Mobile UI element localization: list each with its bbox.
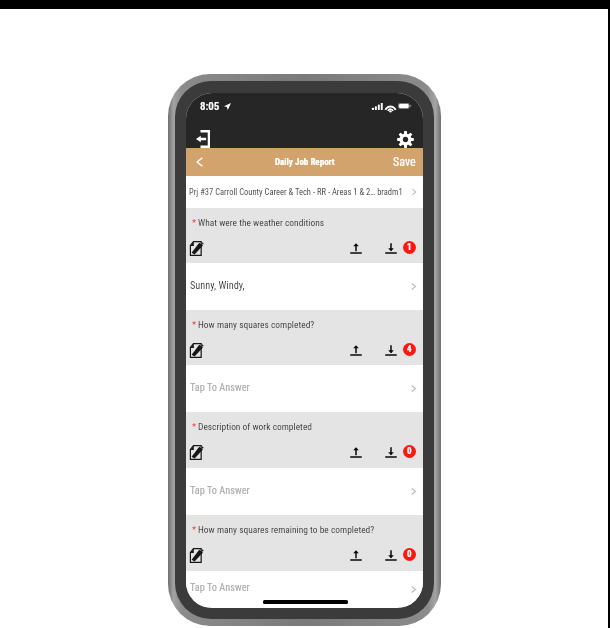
button[interactable]: Back bbox=[186, 148, 214, 176]
staticText: 8:05 bbox=[200, 100, 220, 113]
staticText: 1 bbox=[407, 242, 412, 253]
staticText: Description of work completed bbox=[198, 421, 313, 432]
button[interactable]: Edit bbox=[187, 238, 207, 258]
staticText: Save bbox=[393, 155, 416, 169]
button[interactable]: Prj #37 Carroll County Career & Tech - R… bbox=[186, 176, 423, 208]
button[interactable]: Edit bbox=[187, 545, 207, 565]
staticText: 0 bbox=[407, 446, 412, 457]
staticText: 0 bbox=[407, 549, 412, 560]
button[interactable]: Tap To Answer bbox=[186, 468, 423, 515]
button[interactable]: Upload bbox=[346, 545, 366, 565]
button[interactable]: Log out bbox=[190, 126, 216, 152]
staticText: What were the weather conditions bbox=[198, 217, 325, 228]
button[interactable]: Save bbox=[386, 148, 423, 176]
button[interactable]: Download bbox=[381, 238, 401, 258]
button[interactable]: Upload bbox=[346, 238, 366, 258]
button[interactable]: Download bbox=[381, 340, 401, 360]
staticText: Tap To Answer bbox=[190, 381, 408, 393]
staticText: How many squares remaining to be complet… bbox=[198, 524, 375, 535]
button[interactable]: Upload bbox=[346, 340, 366, 360]
button[interactable]: Download bbox=[381, 442, 401, 462]
button[interactable]: Tap To Answer bbox=[186, 365, 423, 412]
staticText: * bbox=[192, 421, 197, 432]
staticText: Daily Job Report bbox=[275, 157, 335, 168]
button[interactable]: Sunny, Windy, bbox=[186, 263, 423, 310]
button[interactable]: Edit bbox=[187, 340, 207, 360]
staticText: * bbox=[192, 319, 197, 330]
staticText: * bbox=[192, 217, 197, 228]
staticText: * bbox=[192, 524, 197, 535]
button[interactable]: Upload bbox=[346, 442, 366, 462]
staticText: How many squares completed? bbox=[198, 319, 315, 330]
staticText: Tap To Answer bbox=[190, 581, 408, 593]
button[interactable]: Settings bbox=[392, 126, 418, 152]
staticText: Prj #37 Carroll County Career & Tech - R… bbox=[189, 187, 406, 197]
staticText: 4 bbox=[407, 344, 412, 355]
staticText: Sunny, Windy, bbox=[190, 279, 408, 291]
staticText: Tap To Answer bbox=[190, 484, 408, 496]
button[interactable]: Tap To Answer bbox=[186, 571, 423, 607]
button[interactable]: Download bbox=[381, 545, 401, 565]
button[interactable]: Edit bbox=[187, 442, 207, 462]
